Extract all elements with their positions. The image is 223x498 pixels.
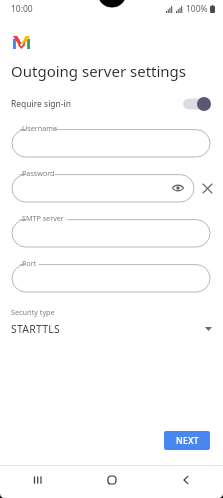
button[interactable]: Home	[75, 466, 149, 493]
staticText: Port	[22, 258, 37, 268]
button[interactable]: Security type	[0, 307, 223, 336]
button[interactable]: Port	[12, 259, 210, 292]
button[interactable]: SMTP server	[12, 214, 210, 247]
staticText: 10:00	[11, 3, 33, 15]
staticText: Require sign-in	[11, 98, 72, 110]
staticText: 100%	[186, 3, 208, 15]
button[interactable]: Password	[12, 169, 194, 202]
staticText: Outgoing server settings	[11, 61, 187, 81]
button[interactable]: Clear password	[199, 178, 215, 194]
button[interactable]: Username	[12, 124, 210, 157]
button[interactable]: Back	[149, 466, 223, 493]
staticText: NEXT	[176, 435, 199, 447]
other: Require sign-in toggle	[183, 97, 211, 111]
button[interactable]: Require sign-in	[0, 94, 223, 114]
button[interactable]: Recent apps	[0, 466, 75, 493]
staticText: SMTP server	[22, 213, 64, 223]
staticText: STARTTLS	[11, 322, 60, 336]
button[interactable]: Show password	[171, 181, 185, 195]
staticText: Security type	[11, 307, 55, 317]
staticText: Password	[22, 168, 55, 178]
staticText: Username	[22, 123, 57, 133]
button[interactable]: NEXT	[164, 431, 210, 450]
other: Open security type menu	[205, 327, 212, 331]
